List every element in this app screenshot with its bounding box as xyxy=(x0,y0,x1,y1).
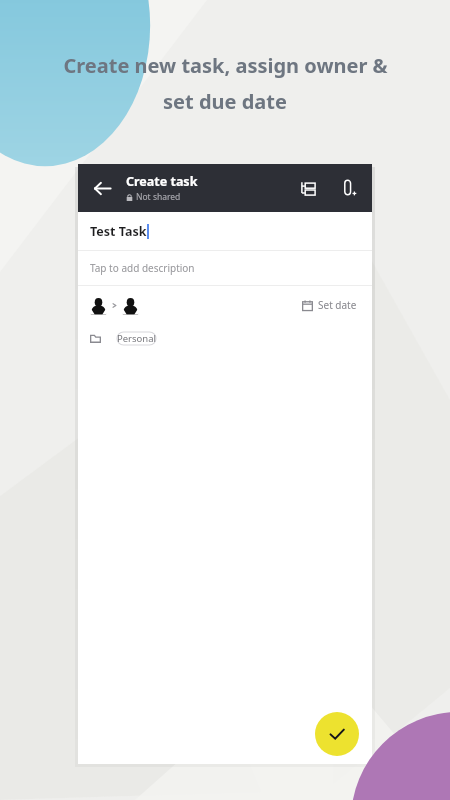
button[interactable]: Assign owner xyxy=(89,296,140,315)
button[interactable]: Subtasks xyxy=(288,168,328,208)
staticText: set due date xyxy=(163,88,287,115)
button[interactable]: Add attachment xyxy=(328,168,368,208)
staticText: Create new task, assign owner & xyxy=(63,52,388,79)
button[interactable]: Set date xyxy=(298,294,361,316)
button[interactable]: Test Task xyxy=(78,212,372,250)
staticText: Personal xyxy=(117,332,156,345)
button[interactable]: Tap to add description xyxy=(78,251,372,285)
staticText: Not shared xyxy=(136,191,181,203)
staticText: Test Task xyxy=(90,223,147,240)
staticText: Set date xyxy=(318,298,357,312)
button[interactable]: Save task xyxy=(315,712,359,756)
staticText: Create task xyxy=(126,173,198,190)
staticText: Tap to add description xyxy=(90,261,195,275)
button[interactable]: Personal xyxy=(108,329,165,348)
button[interactable]: Back xyxy=(78,164,126,212)
